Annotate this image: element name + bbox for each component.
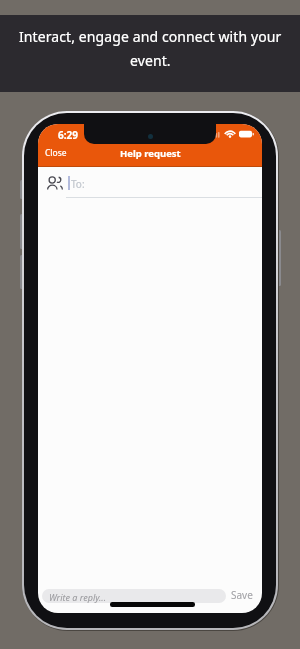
button[interactable]: Write a reply... [42,589,226,603]
staticText: Save [231,588,253,602]
staticText: 6:29 [58,128,78,142]
button[interactable]: Save [231,588,253,602]
staticText: Close [45,147,67,159]
staticText: event. [130,51,171,70]
staticText: Write a reply... [49,591,106,603]
button[interactable]: To: [38,167,262,197]
staticText: Help request [120,147,181,160]
staticText: Interact, engage and connect with your [19,27,282,46]
staticText: To: [71,177,85,191]
button[interactable]: Close [45,147,67,159]
